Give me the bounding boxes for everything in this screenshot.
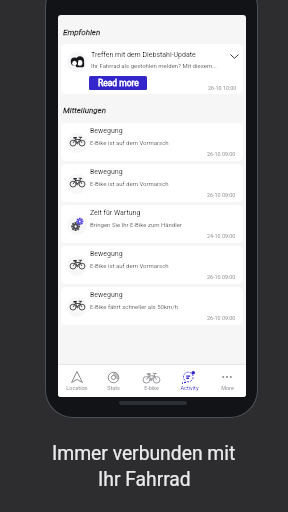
staticText: E-Bike ist auf dem Vormarsch [90,139,169,146]
button[interactable]: Zeit für Wartung [61,205,243,243]
button[interactable]: Bewegung [61,246,243,284]
staticText: Treffen mit dem Diebstahl-Update [91,51,196,59]
staticText: 26-10 09:00 [207,192,236,198]
button[interactable]: E-bike [132,367,170,395]
staticText: 26-10 09:00 [207,274,236,280]
staticText: 24-10 09:00 [207,233,236,239]
button[interactable]: Read more [89,76,147,90]
staticText: Bewegung [90,168,123,176]
button[interactable]: Expand [227,49,241,63]
staticText: Bewegung [90,291,123,299]
staticText: Read more [98,78,139,88]
staticText: Location [66,385,88,391]
staticText: 26-10 09:00 [207,315,236,321]
staticText: Bewegung [90,127,123,135]
staticText: Immer verbunden mit [52,442,236,465]
staticText: Stats [107,385,120,391]
staticText: Activity [180,385,199,391]
staticText: Empfohlen [63,28,101,37]
button[interactable]: Location [58,367,95,395]
button[interactable]: Bewegung [61,123,243,161]
staticText: 26-10 09:00 [207,151,236,157]
button[interactable]: Stats [95,367,132,395]
staticText: Mitteilungen [63,106,106,115]
button[interactable]: Treffen mit dem Diebstahl-Update [61,44,243,94]
staticText: 26-10 10:00 [208,85,237,91]
staticText: E-bike [144,385,159,391]
staticText: More [221,385,234,391]
staticText: E-Bike ist auf dem Vormarsch [90,180,169,187]
staticText: Bewegung [90,250,123,258]
staticText: Ihr Fahrrad als gestohlen melden? Mit di… [91,62,217,69]
button[interactable]: Bewegung [61,287,243,325]
staticText: E-Bike fährt schneller als 50km/h [90,303,178,310]
button[interactable]: Activity [170,367,208,395]
button[interactable]: More [208,367,246,395]
staticText: Ihr Fahrrad [98,468,191,491]
staticText: Bringen Sie Ihr E-Bike zum Händler [90,221,182,228]
staticText: E-Bike ist auf dem Vormarsch [90,262,169,269]
staticText: Zeit für Wartung [90,209,141,217]
button[interactable]: Bewegung [61,164,243,202]
